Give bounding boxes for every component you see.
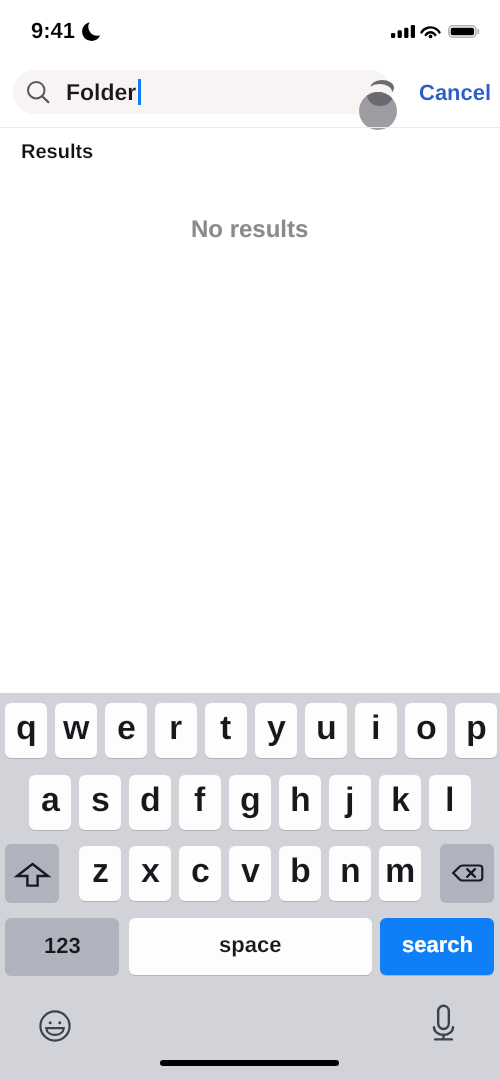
staticText: r	[169, 708, 183, 746]
staticText: w	[63, 708, 90, 746]
button[interactable]: g	[229, 775, 271, 830]
staticText: 9:41	[31, 18, 76, 43]
staticText: x	[141, 851, 160, 889]
button[interactable]: w	[55, 703, 97, 758]
button[interactable]: c	[179, 846, 221, 901]
button[interactable]: Dictation	[425, 1005, 461, 1041]
staticText: z	[92, 851, 109, 889]
staticText: i	[371, 708, 381, 746]
button[interactable]: l	[429, 775, 471, 830]
staticText: space	[219, 932, 282, 957]
staticText: m	[385, 851, 416, 889]
staticText: y	[267, 708, 286, 746]
staticText: q	[16, 708, 37, 746]
staticText: n	[340, 851, 361, 889]
button[interactable]: q	[5, 703, 47, 758]
staticText: h	[290, 780, 311, 818]
staticText: o	[416, 708, 437, 746]
staticText: l	[445, 780, 455, 818]
staticText: v	[241, 851, 260, 889]
button[interactable]: p	[455, 703, 497, 758]
staticText: k	[391, 780, 410, 818]
staticText: No results	[191, 215, 309, 242]
button[interactable]: search	[380, 918, 494, 975]
button[interactable]: t	[205, 703, 247, 758]
button[interactable]: m	[379, 846, 421, 901]
staticText: Folder	[66, 79, 137, 105]
button[interactable]: Shift	[5, 844, 59, 902]
button[interactable]: Profile	[349, 74, 403, 134]
button[interactable]: s	[79, 775, 121, 830]
button[interactable]: Backspace	[440, 844, 494, 902]
button[interactable]: z	[79, 846, 121, 901]
staticText: p	[466, 708, 487, 746]
button[interactable]: u	[305, 703, 347, 758]
button[interactable]: n	[329, 846, 371, 901]
staticText: search	[402, 932, 473, 957]
staticText: e	[117, 708, 136, 746]
button[interactable]: 123	[5, 918, 119, 975]
staticText: s	[91, 780, 110, 818]
button[interactable]: h	[279, 775, 321, 830]
staticText: b	[290, 851, 311, 889]
staticText: u	[316, 708, 337, 746]
staticText: t	[220, 708, 232, 746]
staticText: j	[345, 780, 355, 818]
button[interactable]: Folder	[13, 70, 392, 114]
staticText: d	[140, 780, 161, 818]
staticText: f	[194, 780, 206, 818]
button[interactable]: j	[329, 775, 371, 830]
staticText: c	[191, 851, 210, 889]
staticText: g	[240, 780, 261, 818]
button[interactable]: i	[355, 703, 397, 758]
button[interactable]: space	[129, 918, 372, 975]
button[interactable]: b	[279, 846, 321, 901]
button[interactable]: e	[105, 703, 147, 758]
button[interactable]: a	[29, 775, 71, 830]
button[interactable]: o	[405, 703, 447, 758]
button[interactable]: k	[379, 775, 421, 830]
button[interactable]: v	[229, 846, 271, 901]
staticText: 123	[44, 933, 81, 958]
button[interactable]: Cancel	[419, 80, 492, 105]
button[interactable]: x	[129, 846, 171, 901]
staticText: Cancel	[419, 80, 492, 105]
button[interactable]: d	[129, 775, 171, 830]
button[interactable]: f	[179, 775, 221, 830]
staticText: Results	[21, 140, 94, 162]
button[interactable]: Emoji	[37, 1008, 73, 1044]
button[interactable]: y	[255, 703, 297, 758]
staticText: a	[41, 780, 60, 818]
button[interactable]: r	[155, 703, 197, 758]
